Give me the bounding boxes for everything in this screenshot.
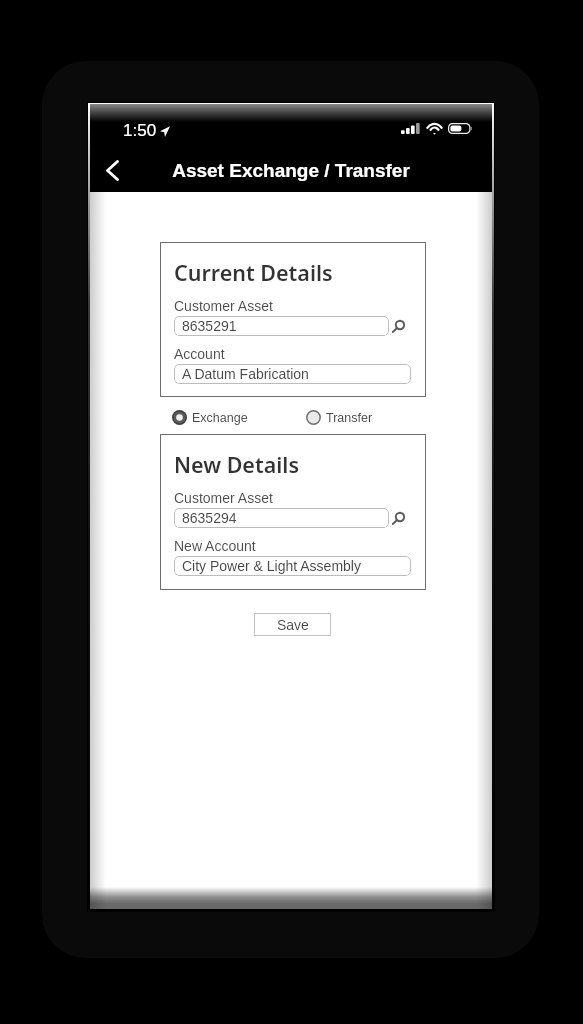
staticText: City Power & Light Assembly xyxy=(182,558,361,574)
staticText: Current Details xyxy=(174,258,333,287)
staticText: 8635294 xyxy=(182,510,237,526)
staticText: Asset Exchange / Transfer xyxy=(172,160,410,181)
staticText: Account xyxy=(174,346,225,362)
button[interactable]: Save xyxy=(254,613,331,636)
button[interactable]: A Datum Fabrication xyxy=(174,364,411,384)
staticText: Customer Asset xyxy=(174,298,273,314)
staticText: 8635291 xyxy=(182,318,237,334)
button[interactable]: Search xyxy=(391,316,411,336)
staticText: Save xyxy=(277,617,309,633)
staticText: Customer Asset xyxy=(174,490,273,506)
staticText: 1:50 xyxy=(123,121,157,140)
button[interactable]: 8635291 xyxy=(174,316,389,336)
staticText: New Details xyxy=(174,450,300,479)
staticText: Transfer xyxy=(326,411,373,425)
staticText: New Account xyxy=(174,538,256,554)
button[interactable]: Transfer xyxy=(306,410,373,425)
button[interactable]: Exchange xyxy=(172,410,248,425)
button[interactable]: Back xyxy=(90,149,134,192)
staticText: A Datum Fabrication xyxy=(182,366,309,382)
staticText: Exchange xyxy=(192,411,248,425)
button[interactable]: Search xyxy=(391,508,411,528)
button[interactable]: 8635294 xyxy=(174,508,389,528)
button[interactable]: City Power & Light Assembly xyxy=(174,556,411,576)
